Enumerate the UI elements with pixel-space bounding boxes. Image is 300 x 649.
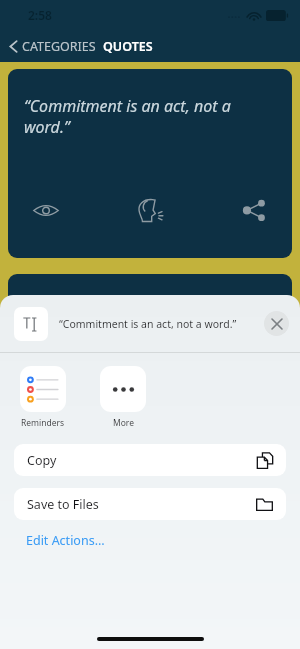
- staticText: QUOTES: [103, 38, 153, 55]
- staticText: “Commitment is an act, not a word.”: [24, 95, 256, 138]
- button[interactable]: Close: [264, 311, 289, 336]
- button[interactable]: Edit Actions…: [26, 532, 105, 549]
- staticText: CATEGORIES: [22, 38, 96, 55]
- button[interactable]: Reminders: [12, 366, 74, 429]
- button[interactable]: Save to Files: [14, 488, 286, 520]
- staticText: Copy: [27, 452, 57, 469]
- button[interactable]: “Action is language.”: [8, 274, 292, 344]
- staticText: 2:58: [28, 7, 52, 23]
- button[interactable]: Favorite: [26, 190, 66, 230]
- staticText: Save to Files: [27, 496, 99, 513]
- staticText: “Action is language.”: [24, 300, 170, 322]
- button[interactable]: Copy: [14, 444, 286, 476]
- button[interactable]: Speak: [130, 190, 170, 230]
- staticText: Reminders: [21, 417, 65, 429]
- button[interactable]: Share: [234, 190, 274, 230]
- staticText: More: [113, 417, 134, 429]
- button[interactable]: “Commitment is an act, not a word.”: [8, 69, 292, 258]
- staticText: “Commitment is an act, not a word.”: [59, 317, 237, 331]
- button[interactable]: CATEGORIES: [6, 33, 99, 60]
- button[interactable]: More: [92, 366, 154, 429]
